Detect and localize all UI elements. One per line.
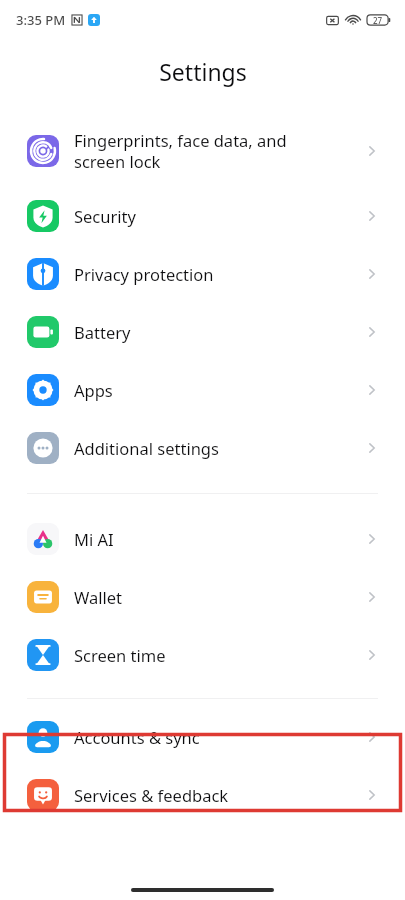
button[interactable]: Apps bbox=[0, 361, 405, 419]
button[interactable]: Fingerprints, face data, and screen lock bbox=[0, 115, 405, 187]
staticText: Accounts & sync bbox=[74, 726, 363, 748]
button[interactable]: Privacy protection bbox=[0, 245, 405, 303]
staticText: Apps bbox=[74, 379, 363, 401]
staticText: Services & feedback bbox=[74, 784, 363, 806]
staticText: Settings bbox=[159, 56, 247, 87]
staticText: Battery bbox=[74, 321, 363, 343]
staticText: Screen time bbox=[74, 644, 363, 666]
button[interactable]: Screen time bbox=[0, 626, 405, 684]
button[interactable]: Wallet bbox=[0, 568, 405, 626]
button[interactable]: Security bbox=[0, 187, 405, 245]
staticText: Fingerprints, face data, and screen lock bbox=[74, 129, 363, 173]
staticText: Privacy protection bbox=[74, 263, 363, 285]
staticText: 27 bbox=[373, 15, 383, 26]
button[interactable]: Mi AI bbox=[0, 510, 405, 568]
staticText: Wallet bbox=[74, 586, 363, 608]
button[interactable]: Battery bbox=[0, 303, 405, 361]
button[interactable]: Accounts & sync bbox=[0, 708, 405, 766]
button[interactable]: Services & feedback bbox=[0, 766, 405, 824]
button[interactable]: Additional settings bbox=[0, 419, 405, 477]
staticText: Security bbox=[74, 205, 363, 227]
staticText: Additional settings bbox=[74, 437, 363, 459]
staticText: Mi AI bbox=[74, 528, 363, 550]
staticText: 3:35 PM bbox=[16, 11, 66, 29]
